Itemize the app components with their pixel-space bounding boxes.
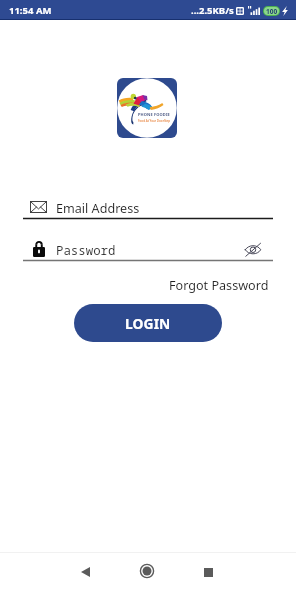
button[interactable]: Home (129, 553, 165, 589)
button[interactable]: LOGIN (74, 304, 222, 342)
button[interactable]: Recents (190, 554, 226, 590)
staticText: 100 (266, 7, 278, 15)
button[interactable]: Email Address (23, 196, 273, 217)
staticText: Password (56, 242, 116, 259)
staticText: PHONE FOODIE (138, 112, 170, 117)
button[interactable]: Forgot Password (163, 273, 275, 298)
staticText: Forgot Password (169, 277, 269, 294)
staticText: Food At Your DoorStep (138, 119, 171, 123)
staticText: Email Address (56, 200, 140, 217)
staticText: ...2.5KB/s (191, 4, 234, 17)
staticText: 11:54 AM (9, 4, 52, 17)
staticText: LOGIN (125, 314, 171, 333)
button[interactable]: Password (23, 238, 273, 259)
button[interactable]: Show password (242, 239, 264, 259)
button[interactable]: Back (67, 554, 103, 590)
